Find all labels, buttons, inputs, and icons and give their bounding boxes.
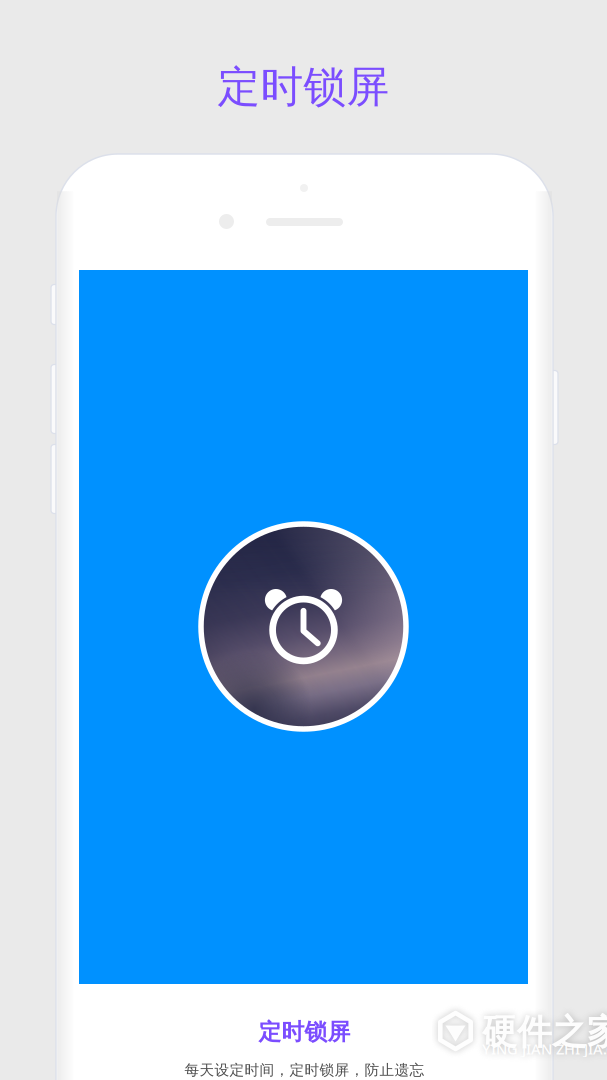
staticText: 硬件之家 bbox=[482, 1011, 607, 1054]
button[interactable]: 定时锁屏 app icon bbox=[201, 524, 406, 729]
staticText: 定时锁屏 bbox=[258, 1018, 350, 1046]
button[interactable]: 定时锁屏 bbox=[56, 1019, 553, 1045]
staticText: YING JIAN ZHI JIA.COM bbox=[482, 1039, 607, 1058]
staticText: 定时锁屏 bbox=[217, 61, 389, 113]
staticText: 每天设定时间，定时锁屏，防止遗忘 bbox=[184, 1061, 424, 1079]
